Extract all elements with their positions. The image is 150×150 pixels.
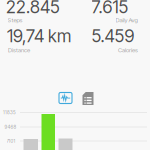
staticText: 7.615	[91, 0, 128, 17]
staticText: 19,74 km	[7, 25, 71, 46]
staticText: Daily Avg	[115, 16, 137, 24]
staticText: 22.845	[6, 0, 60, 17]
staticText: 5.459	[91, 25, 134, 46]
button[interactable]: Report	[82, 92, 93, 105]
staticText: 11835	[3, 110, 16, 115]
staticText: Calories	[118, 46, 138, 54]
staticText: Steps	[7, 16, 22, 24]
staticText: 7101	[6, 138, 15, 144]
button[interactable]: Activity chart	[59, 92, 72, 103]
staticText: 9468	[4, 124, 16, 130]
staticText: Distance	[8, 46, 30, 54]
